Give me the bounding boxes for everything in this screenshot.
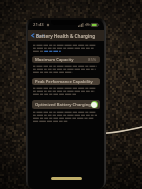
button[interactable]: Back to Battery	[28, 30, 48, 41]
staticText: Maximum Capacity	[35, 57, 74, 63]
staticText: 21:43	[33, 22, 44, 28]
staticText: Optimized Battery Charging	[35, 102, 91, 108]
button[interactable]: Peak Performance Capability	[32, 78, 100, 85]
staticText: 85%	[88, 57, 97, 63]
staticText: Peak Performance Capability	[35, 79, 93, 85]
staticText: Back	[36, 33, 45, 38]
button[interactable]: Optimized Battery Charging	[32, 100, 100, 109]
staticText: Battery Health & Charging	[36, 33, 96, 39]
other: Optimized Battery Charging on	[91, 101, 98, 108]
button[interactable]: Maximum Capacity	[32, 56, 100, 63]
